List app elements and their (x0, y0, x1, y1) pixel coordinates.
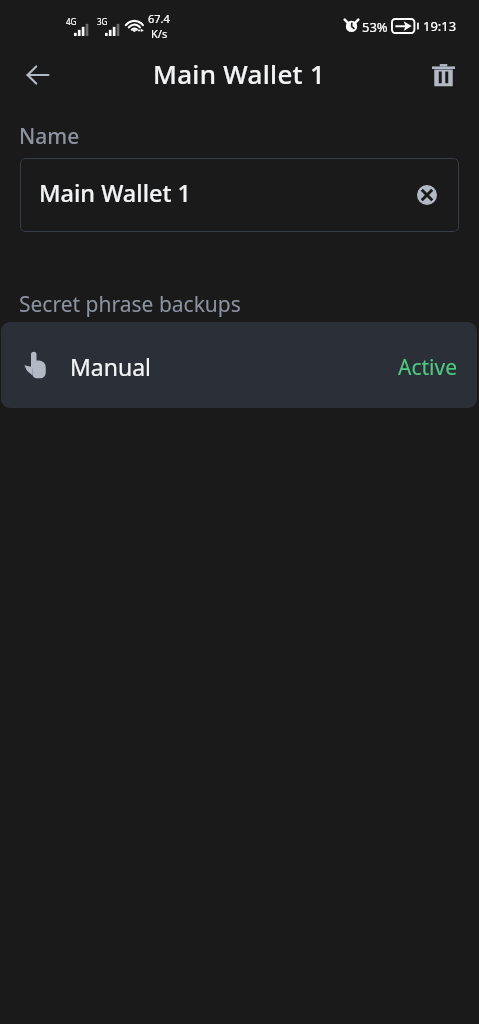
staticText: Manual (70, 351, 152, 382)
button[interactable]: Manual (1, 322, 477, 408)
staticText: Name (19, 122, 80, 151)
staticText: 4G (66, 16, 77, 27)
staticText: 19:13 (423, 17, 457, 35)
staticText: 67.4 (148, 11, 170, 26)
staticText: 53% (362, 18, 388, 36)
button[interactable]: Delete (419, 51, 467, 99)
staticText: Active (398, 353, 458, 382)
button[interactable]: Clear (409, 177, 445, 213)
staticText: K/s (151, 26, 168, 41)
button[interactable]: Back (14, 51, 62, 99)
staticText: 3G (97, 16, 108, 27)
button[interactable]: Main Wallet 1 (20, 158, 459, 232)
staticText: Main Wallet 1 (153, 56, 326, 91)
staticText: Secret phrase backups (19, 290, 241, 319)
staticText: Main Wallet 1 (39, 177, 192, 209)
